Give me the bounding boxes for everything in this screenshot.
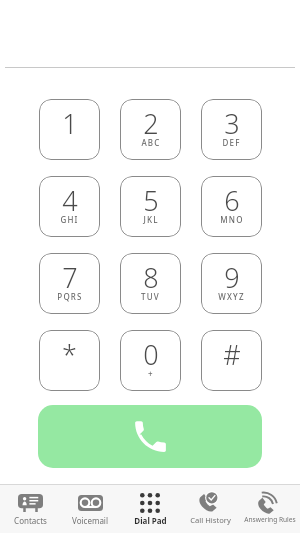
button[interactable] bbox=[38, 405, 262, 468]
staticText: WXYZ bbox=[218, 291, 245, 302]
button[interactable]: 2 bbox=[120, 99, 181, 160]
staticText: GHI bbox=[60, 214, 79, 225]
button[interactable]: # bbox=[201, 330, 262, 391]
button[interactable]: Dial Pad bbox=[120, 485, 180, 533]
button[interactable]: 8 bbox=[120, 253, 181, 314]
staticText: Dial Pad bbox=[134, 515, 167, 526]
staticText: PQRS bbox=[57, 291, 83, 302]
staticText: 4 bbox=[62, 182, 78, 219]
button[interactable]: 3 bbox=[201, 99, 262, 160]
staticText: * bbox=[62, 336, 77, 373]
staticText: Answering Rules bbox=[244, 515, 296, 524]
staticText: 8 bbox=[143, 259, 159, 296]
staticText: MNO bbox=[220, 214, 244, 225]
staticText: 6 bbox=[224, 182, 240, 219]
staticText: 0 bbox=[143, 336, 159, 373]
button[interactable]: 9 bbox=[201, 253, 262, 314]
staticText: 1 bbox=[62, 105, 78, 142]
staticText: 2 bbox=[143, 105, 159, 142]
staticText: 3 bbox=[224, 105, 240, 142]
button[interactable]: Answering Rules bbox=[240, 485, 300, 533]
staticText: Call History bbox=[190, 515, 231, 525]
staticText: DEF bbox=[222, 137, 241, 148]
button[interactable]: 0 bbox=[120, 330, 181, 391]
button[interactable]: Voicemail bbox=[60, 485, 120, 533]
staticText: + bbox=[148, 368, 154, 379]
button[interactable]: * bbox=[39, 330, 100, 391]
staticText: 7 bbox=[62, 259, 78, 296]
button[interactable]: 5 bbox=[120, 176, 181, 237]
button[interactable]: 7 bbox=[39, 253, 100, 314]
button[interactable]: 1 bbox=[39, 99, 100, 160]
staticText: ABC bbox=[141, 137, 161, 148]
button[interactable]: 4 bbox=[39, 176, 100, 237]
staticText: # bbox=[223, 336, 241, 373]
staticText: JKL bbox=[143, 214, 159, 225]
staticText: Voicemail bbox=[72, 515, 108, 526]
button[interactable]: Call History bbox=[180, 485, 240, 533]
staticText: TUV bbox=[141, 291, 160, 302]
staticText: 5 bbox=[143, 182, 159, 219]
staticText: 9 bbox=[224, 259, 240, 296]
button[interactable]: 6 bbox=[201, 176, 262, 237]
staticText: Contacts bbox=[14, 515, 47, 526]
button[interactable]: Contacts bbox=[0, 485, 60, 533]
